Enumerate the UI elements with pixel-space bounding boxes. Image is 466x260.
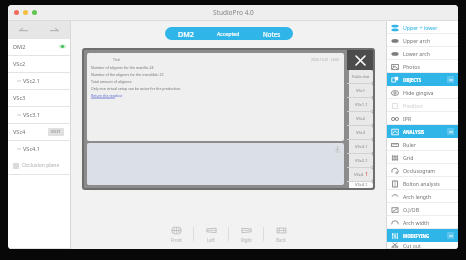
button[interactable]: DM2 bbox=[165, 27, 207, 40]
staticText: 2022-10-21 14:55 bbox=[311, 57, 340, 62]
staticText: VSc4.1 bbox=[23, 145, 41, 153]
button[interactable]: Collapse bbox=[447, 232, 454, 239]
button[interactable]: DM2 bbox=[8, 38, 70, 55]
staticText: Total amount of aligners: bbox=[91, 79, 133, 84]
button[interactable]: Grid bbox=[387, 151, 458, 164]
staticText: Position bbox=[403, 102, 423, 109]
staticText: VSc3 bbox=[13, 94, 26, 102]
button[interactable]: Close bbox=[14, 10, 19, 15]
button[interactable]: VSc2 bbox=[8, 55, 70, 72]
button[interactable]: Undo bbox=[8, 21, 39, 38]
button[interactable]: Notes bbox=[250, 27, 293, 40]
staticText: VSc2.1 bbox=[355, 158, 368, 164]
staticText: VSc4 bbox=[13, 128, 26, 136]
staticText: Trial bbox=[113, 57, 121, 62]
staticText: VSc1.1 bbox=[355, 102, 368, 108]
button[interactable]: O.J/OB bbox=[387, 203, 458, 216]
staticText: Bolton analysis bbox=[403, 180, 440, 187]
button[interactable]: Hide gingiva bbox=[387, 86, 458, 99]
staticText: Grid bbox=[403, 154, 414, 161]
staticText: VSc3.1 bbox=[23, 111, 41, 119]
staticText: VSc2.1 bbox=[23, 77, 41, 85]
button[interactable]: VSc3 bbox=[349, 126, 373, 139]
staticText: StudioPro 4.0 bbox=[213, 8, 254, 17]
button[interactable]: Photos bbox=[387, 60, 458, 73]
button[interactable]: VSc3.1 bbox=[8, 106, 70, 123]
button[interactable]: Ruler bbox=[387, 138, 458, 151]
button[interactable]: ANALYSIS bbox=[387, 125, 458, 138]
button[interactable]: Return the readout bbox=[91, 93, 123, 98]
staticText: Lower arch bbox=[403, 50, 430, 57]
button[interactable]: VSc4.1 bbox=[349, 182, 373, 188]
button[interactable]: Publis chat bbox=[349, 70, 373, 83]
button[interactable]: MODIFYING bbox=[387, 229, 458, 242]
staticText: Photos bbox=[403, 63, 420, 70]
button[interactable]: EDIT bbox=[51, 129, 61, 135]
button[interactable]: VSc2.1 bbox=[8, 72, 70, 89]
button[interactable]: Position bbox=[387, 99, 458, 112]
button[interactable]: VSc2.1 bbox=[349, 154, 373, 167]
button[interactable]: VSc4 bbox=[8, 123, 70, 140]
staticText: VSc4 bbox=[354, 172, 364, 178]
staticText: Number of the aligners for the mandible:… bbox=[91, 72, 164, 77]
button[interactable]: VSc3 bbox=[8, 89, 70, 106]
staticText: OBJECTS bbox=[403, 77, 422, 83]
staticText: Only one virtual setup can be active for… bbox=[91, 86, 181, 91]
button[interactable]: Accepted bbox=[207, 27, 250, 40]
button[interactable]: Upper arch bbox=[387, 34, 458, 47]
button[interactable]: Collapse bbox=[447, 128, 454, 135]
button[interactable]: VSc4 bbox=[349, 168, 373, 181]
button[interactable]: Close bbox=[347, 50, 373, 70]
button[interactable]: Arch length bbox=[387, 190, 458, 203]
staticText: VSc3.1 bbox=[355, 144, 368, 150]
button[interactable]: VSc1.1 bbox=[349, 98, 373, 111]
button[interactable]: VSc3.1 bbox=[349, 140, 373, 153]
button[interactable]: Upper + lower bbox=[387, 21, 458, 34]
staticText: VSc3 bbox=[356, 130, 366, 136]
button[interactable]: Lower arch bbox=[387, 47, 458, 60]
staticText: VSc1 bbox=[356, 88, 366, 94]
staticText: Notes bbox=[263, 30, 281, 38]
other: Back view bbox=[276, 225, 287, 236]
button[interactable]: Front view bbox=[159, 223, 193, 245]
button[interactable]: IPR bbox=[387, 112, 458, 125]
button[interactable]: VSc2 bbox=[349, 112, 373, 125]
staticText: Hide gingiva bbox=[403, 89, 434, 96]
staticText: Left bbox=[207, 237, 215, 243]
button[interactable]: VSc1 bbox=[349, 84, 373, 97]
staticText: Occlusion plane bbox=[22, 162, 60, 169]
staticText: Front bbox=[171, 237, 182, 243]
staticText: MODIFYING bbox=[403, 233, 430, 239]
staticText: Upper + lower bbox=[403, 24, 438, 31]
button[interactable]: Arch width bbox=[387, 216, 458, 229]
button[interactable]: OBJECTS bbox=[387, 73, 458, 86]
button[interactable]: Left view bbox=[194, 223, 228, 245]
button[interactable]: Occlusogram bbox=[387, 164, 458, 177]
staticText: Publis chat bbox=[352, 74, 370, 79]
button[interactable]: Minimize bbox=[23, 10, 28, 15]
staticText: Arch length bbox=[403, 193, 432, 200]
staticText: EDIT bbox=[51, 129, 61, 135]
staticText: Upper arch bbox=[403, 37, 431, 44]
staticText: Back bbox=[276, 237, 286, 243]
staticText: Cut out bbox=[403, 242, 421, 249]
staticText: VSc2 bbox=[356, 116, 366, 122]
button[interactable]: Back view bbox=[264, 223, 298, 245]
staticText: Arch width bbox=[403, 219, 430, 226]
other: Left view bbox=[206, 225, 217, 236]
button[interactable]: Cut out bbox=[387, 242, 458, 249]
button[interactable]: Redo bbox=[39, 21, 70, 38]
staticText: Ruler bbox=[403, 141, 416, 148]
button[interactable]: VSc4.1 bbox=[8, 140, 70, 157]
button[interactable]: Right view bbox=[229, 223, 263, 245]
other: Download bbox=[334, 146, 341, 153]
staticText: DM2 bbox=[13, 43, 26, 51]
other: Right view bbox=[241, 225, 252, 236]
button[interactable]: Bolton analysis bbox=[387, 177, 458, 190]
staticText: VSc2 bbox=[13, 60, 26, 68]
button[interactable]: Collapse bbox=[447, 76, 454, 83]
staticText: Right bbox=[241, 237, 252, 243]
staticText: ANALYSIS bbox=[403, 129, 425, 135]
button[interactable]: Maximize bbox=[32, 10, 37, 15]
button[interactable]: Occlusion plane bbox=[8, 157, 70, 174]
